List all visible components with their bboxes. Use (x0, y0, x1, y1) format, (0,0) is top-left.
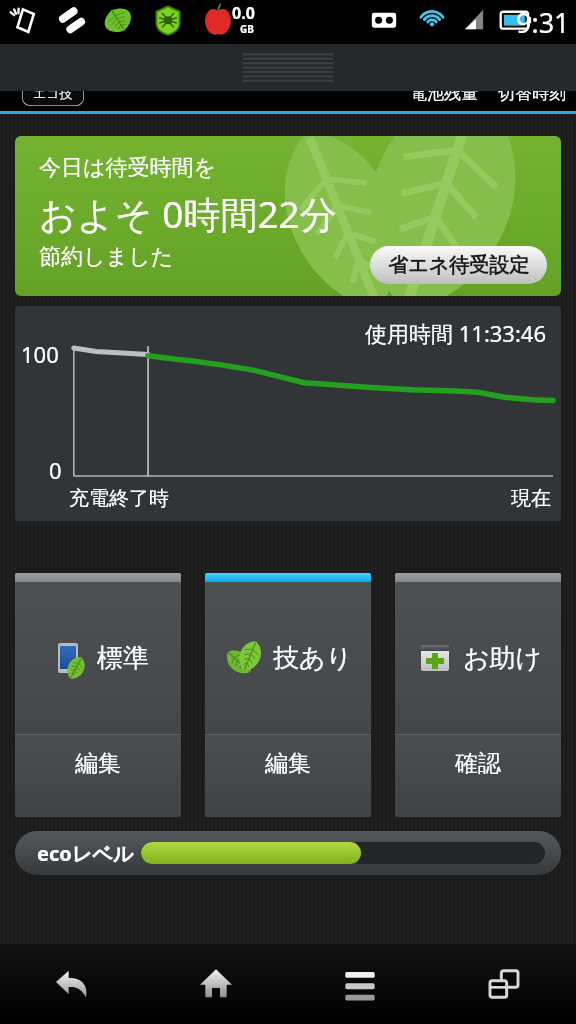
staticText: お助け (463, 642, 543, 675)
staticText: およそ 0時間22分 (39, 188, 337, 239)
staticText: エコ技 (33, 85, 73, 101)
staticText: 編集 (75, 749, 121, 778)
staticText: 0.0 (232, 2, 255, 24)
button[interactable]: Recent apps (432, 944, 576, 1024)
staticText: 100 (21, 339, 59, 369)
staticText: 切替時刻 (498, 83, 566, 104)
staticText: GB (240, 22, 254, 36)
staticText: 編集 (265, 749, 311, 778)
button[interactable]: 技あり (205, 582, 371, 734)
staticText: 電池残量 (410, 83, 478, 104)
button[interactable]: 今日は待受時間を (15, 136, 561, 296)
button[interactable]: 確認 (395, 735, 561, 817)
button[interactable]: 省エネ待受設定 (370, 246, 547, 284)
staticText: 9:31 (516, 4, 570, 41)
button[interactable]: Home (144, 944, 288, 1024)
staticText: 確認 (455, 749, 501, 778)
staticText: 標準 (97, 642, 149, 675)
button[interactable]: お助け (395, 582, 561, 734)
staticText: 節約しました (39, 243, 174, 271)
button[interactable]: 編集 (15, 735, 181, 817)
button[interactable]: Back (0, 944, 144, 1024)
staticText: 今日は待受時間を (39, 154, 217, 182)
staticText: 現在 (511, 486, 551, 511)
staticText: 技あり (273, 642, 353, 675)
button[interactable]: ecoレベル (15, 831, 561, 875)
staticText: 使用時間 11:33:46 (365, 318, 547, 348)
button[interactable]: Menu (288, 944, 432, 1024)
staticText: ecoレベル (37, 840, 134, 867)
button[interactable]: 標準 (15, 582, 181, 734)
button[interactable]: エコ技 (22, 80, 84, 106)
staticText: 充電終了時 (69, 486, 169, 511)
staticText: 省エネ待受設定 (388, 253, 529, 278)
button[interactable]: 編集 (205, 735, 371, 817)
staticText: 0 (49, 455, 62, 485)
